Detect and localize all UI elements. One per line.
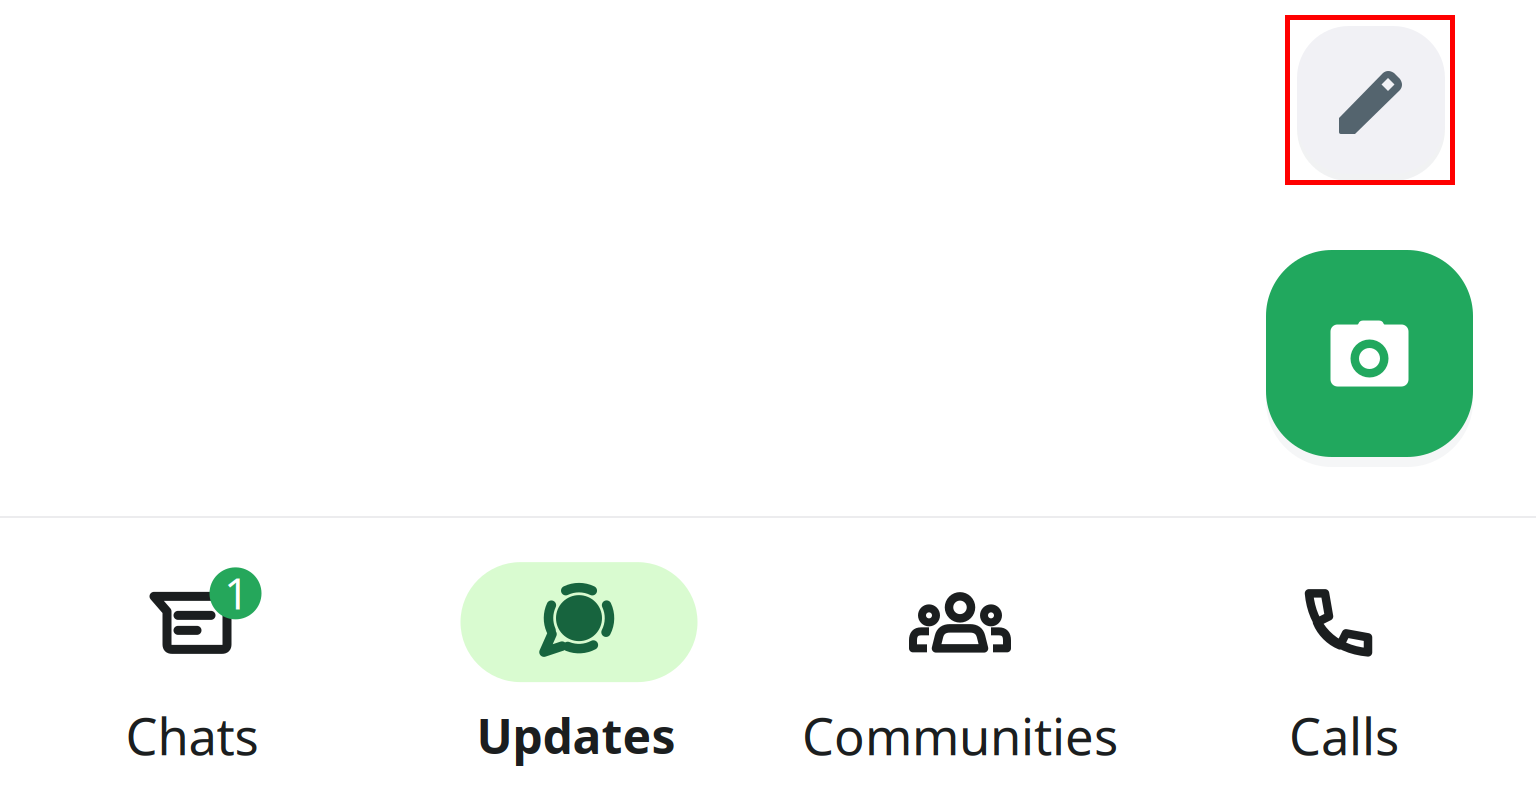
button[interactable]: 1: [0, 555, 384, 769]
staticText: 1: [224, 563, 249, 621]
button[interactable]: Communities: [768, 555, 1152, 769]
button[interactable]: Calls: [1152, 555, 1536, 769]
button[interactable]: Camera: [1262, 241, 1477, 466]
button[interactable]: Updates: [384, 557, 768, 767]
button[interactable]: Compose status: [1285, 15, 1455, 185]
staticText: Calls: [1289, 702, 1399, 769]
staticText: Chats: [125, 702, 258, 769]
staticText: Updates: [476, 704, 675, 767]
staticText: Communities: [802, 702, 1118, 769]
